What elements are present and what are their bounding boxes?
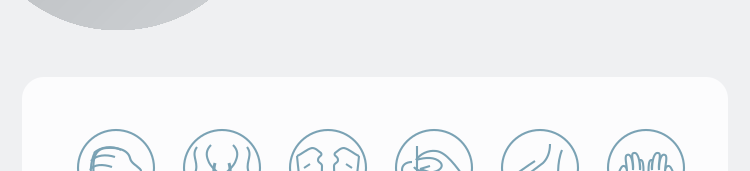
button[interactable]: Bikini: [0, 0, 750, 171]
button[interactable]: Face: [0, 0, 750, 171]
button[interactable]: Legs: [0, 0, 750, 171]
button[interactable]: Hands: [0, 0, 750, 171]
button[interactable]: Underarms: [0, 0, 750, 171]
button[interactable]: Arms: [0, 0, 750, 171]
